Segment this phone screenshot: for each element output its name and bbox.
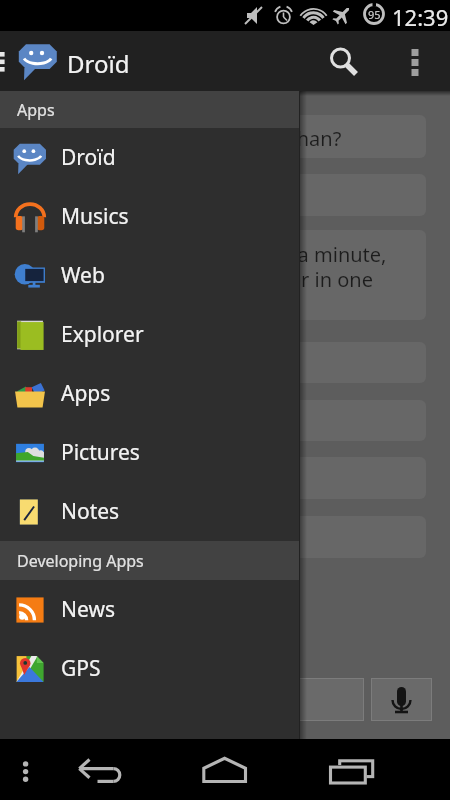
- button[interactable]: Notes: [0, 482, 300, 541]
- button[interactable]: Search: [322, 43, 362, 83]
- staticText: Explorer: [61, 320, 144, 349]
- staticText: Pictures: [61, 438, 140, 467]
- staticText: Musics: [61, 202, 129, 231]
- staticText: Droïd: [67, 47, 130, 80]
- button[interactable]: Home: [198, 753, 252, 789]
- button[interactable]: Apps: [0, 364, 300, 423]
- button[interactable]: More options: [398, 43, 434, 79]
- staticText: Apps: [17, 99, 55, 121]
- staticText: I will be there in just a minute, we can…: [103, 241, 387, 293]
- button[interactable]: Musics: [0, 187, 300, 246]
- button[interactable]: Pictures: [0, 423, 300, 482]
- staticText: GPS: [61, 654, 101, 683]
- button[interactable]: GPS: [0, 639, 300, 698]
- staticText: 12:39: [392, 2, 449, 32]
- button[interactable]: [18, 678, 364, 721]
- staticText: Notes: [61, 497, 120, 526]
- button[interactable]: Voice input: [371, 678, 432, 721]
- button[interactable]: Back: [70, 753, 124, 793]
- staticText: Droïd: [61, 143, 116, 172]
- button[interactable]: Explorer: [0, 305, 300, 364]
- staticText: Apps: [61, 379, 111, 408]
- button[interactable]: Web: [0, 246, 300, 305]
- button[interactable]: Open navigation drawer: [0, 31, 18, 91]
- staticText: Hey, how are you Nathan?: [97, 125, 342, 152]
- button[interactable]: News: [0, 580, 300, 639]
- button[interactable]: Menu: [8, 745, 44, 795]
- button[interactable]: Recent apps: [326, 757, 378, 789]
- staticText: News: [61, 595, 115, 624]
- staticText: Developing Apps: [17, 550, 144, 572]
- staticText: 95: [368, 7, 381, 22]
- staticText: Web: [61, 261, 105, 290]
- button[interactable]: Droïd: [0, 128, 300, 187]
